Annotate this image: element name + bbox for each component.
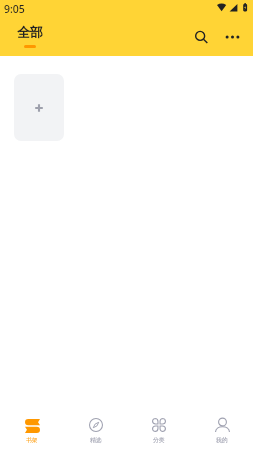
button[interactable]: 我的 — [190, 417, 253, 443]
staticText: 我的 — [216, 436, 228, 443]
button[interactable]: Search — [188, 24, 213, 49]
button[interactable]: More options — [220, 24, 245, 49]
staticText: 书架 — [26, 436, 38, 443]
button[interactable]: 分类 — [127, 417, 190, 443]
button[interactable]: 书架 — [0, 417, 64, 443]
button[interactable]: Add book — [14, 74, 64, 141]
button[interactable]: 精选 — [64, 417, 127, 443]
staticText: 9:05 — [4, 2, 25, 16]
staticText: 精选 — [90, 436, 102, 443]
staticText: 全部 — [17, 24, 43, 40]
staticText: 分类 — [153, 436, 165, 443]
